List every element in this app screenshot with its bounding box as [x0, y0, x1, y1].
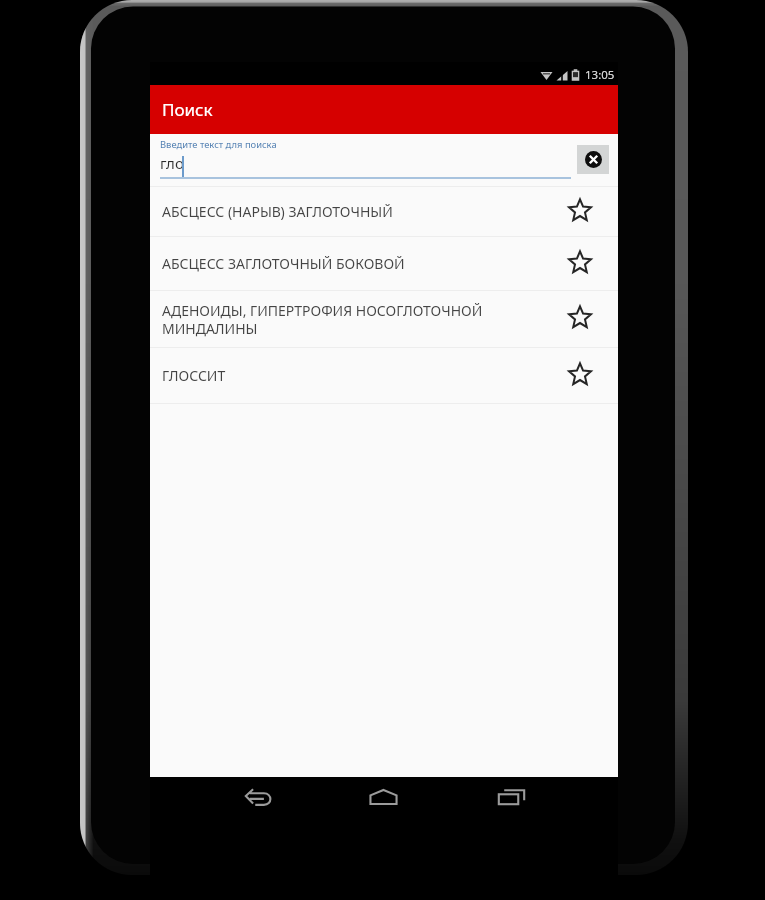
button[interactable]: АДЕНОИДЫ, ГИПЕРТРОФИЯ НОСОГЛОТОЧНОЙ МИНД…: [150, 291, 618, 347]
staticText: АБСЦЕСС (НАРЫВ) ЗАГЛОТОЧНЫЙ: [162, 202, 534, 221]
staticText: Поиск: [162, 98, 213, 121]
staticText: ГЛОССИТ: [162, 366, 534, 385]
button[interactable]: Recents: [481, 777, 541, 817]
button[interactable]: Очистить: [577, 145, 609, 174]
button[interactable]: АБСЦЕСС (НАРЫВ) ЗАГЛОТОЧНЫЙ: [150, 187, 618, 236]
button[interactable]: АБСЦЕСС ЗАГЛОТОЧНЫЙ БОКОВОЙ: [150, 237, 618, 290]
staticText: 13:05: [585, 67, 615, 83]
staticText: гло: [160, 153, 184, 173]
staticText: Введите текст для поиска: [160, 138, 277, 151]
button[interactable]: Введите текст для поиска: [160, 136, 571, 179]
button[interactable]: Home: [353, 777, 413, 817]
staticText: АДЕНОИДЫ, ГИПЕРТРОФИЯ НОСОГЛОТОЧНОЙ МИНД…: [162, 301, 534, 338]
staticText: АБСЦЕСС ЗАГЛОТОЧНЫЙ БОКОВОЙ: [162, 254, 534, 273]
button[interactable]: ГЛОССИТ: [150, 348, 618, 403]
button[interactable]: Back: [228, 777, 288, 817]
